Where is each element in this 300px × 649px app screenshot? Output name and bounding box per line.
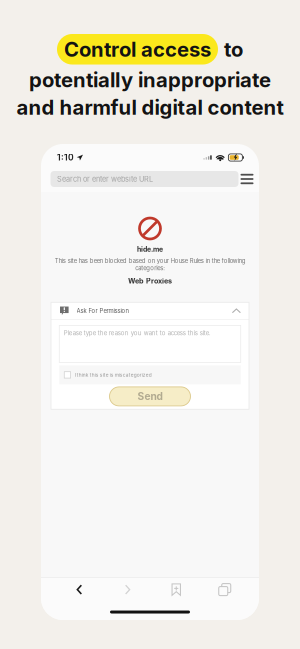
staticText: I think this site is miscategorized (75, 372, 152, 378)
staticText: Please type the reason you want to acces… (64, 329, 211, 337)
staticText: Search or enter website URL (57, 175, 153, 183)
button[interactable]: Bookmarks (152, 578, 200, 602)
staticText: Web Proxies (128, 277, 172, 285)
staticText: Control access (64, 37, 211, 61)
button[interactable]: Forward (103, 578, 152, 602)
button[interactable]: Tabs (200, 578, 249, 602)
staticText: This site has been blocked based on your… (54, 257, 245, 272)
staticText: 1:10 (57, 152, 74, 163)
button[interactable]: Menu (238, 171, 255, 187)
staticText: potentially inappropriate (29, 67, 271, 92)
staticText: hide.me (137, 245, 163, 253)
button[interactable]: Send (109, 387, 190, 406)
staticText: Send (137, 390, 162, 403)
staticText: Ask For Permission (77, 307, 129, 314)
staticText: to (224, 37, 243, 61)
staticText: and harmful digital content (16, 95, 283, 119)
button[interactable]: Ask For Permission (51, 302, 249, 319)
button[interactable]: Back (55, 578, 103, 602)
